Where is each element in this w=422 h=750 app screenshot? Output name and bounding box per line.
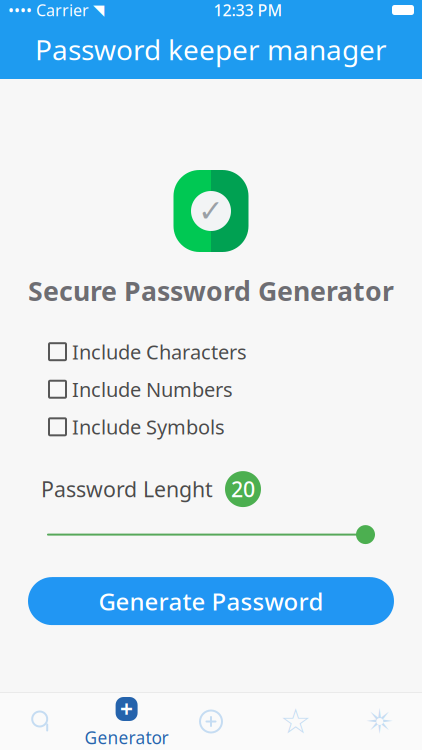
button[interactable]: Add bbox=[169, 693, 253, 750]
button[interactable]: Favorites bbox=[253, 693, 338, 750]
button[interactable]: Generate Password bbox=[28, 577, 394, 625]
staticText: Include Symbols bbox=[72, 413, 225, 440]
button[interactable]: Include Symbols bbox=[49, 413, 225, 440]
staticText: Include Numbers bbox=[72, 376, 233, 403]
staticText: Password Lenght bbox=[41, 475, 213, 503]
staticText: Secure Password Generator bbox=[28, 273, 394, 308]
button[interactable]: Settings bbox=[338, 693, 422, 750]
staticText: ✓ bbox=[198, 194, 224, 228]
button[interactable]: Search bbox=[0, 693, 84, 750]
button[interactable]: + bbox=[84, 693, 169, 750]
staticText: Include Characters bbox=[72, 338, 247, 365]
staticText: 20 bbox=[231, 475, 255, 503]
staticText: Generate Password bbox=[98, 585, 323, 617]
staticText: ◥ bbox=[93, 2, 104, 18]
button[interactable]: Include Characters bbox=[49, 338, 247, 365]
staticText: Generator bbox=[85, 726, 169, 749]
button[interactable]: Include Numbers bbox=[49, 376, 233, 403]
staticText: Password keeper manager bbox=[35, 31, 387, 68]
staticText: •••• Carrier bbox=[8, 0, 93, 21]
staticText: 12:33 PM bbox=[213, 0, 282, 21]
staticText: ✴ bbox=[365, 702, 394, 741]
staticText: ☆ bbox=[280, 702, 311, 741]
staticText: + bbox=[120, 694, 133, 724]
